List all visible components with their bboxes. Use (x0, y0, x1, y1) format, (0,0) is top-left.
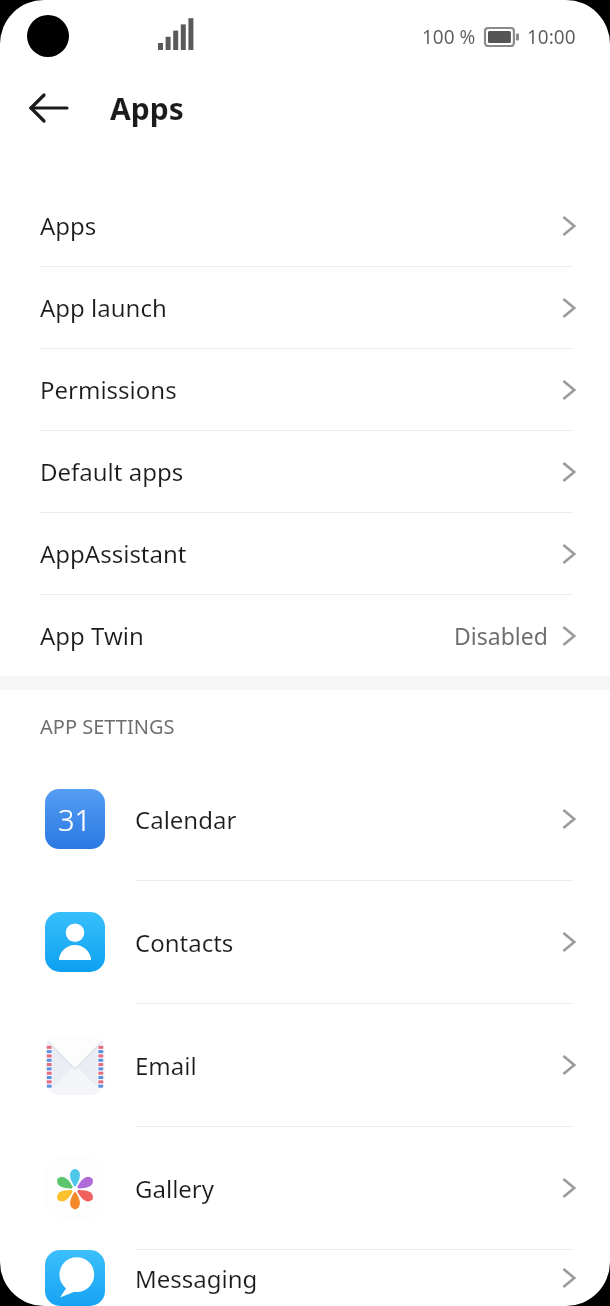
staticText: Permissions (40, 373, 177, 406)
staticText: App Twin (40, 619, 144, 652)
staticText: Apps (40, 209, 97, 242)
button[interactable]: AppAssistant (0, 513, 610, 594)
staticText: 31 (58, 800, 92, 839)
staticText: Messaging (135, 1262, 258, 1295)
button[interactable]: Gallery (0, 1127, 610, 1249)
staticText: AppAssistant (40, 537, 187, 570)
button[interactable]: Default apps (0, 431, 610, 512)
button[interactable]: Apps (0, 185, 610, 266)
staticText: 10:00 (527, 24, 576, 50)
button[interactable]: Permissions (0, 349, 610, 430)
staticText: 100 % (422, 24, 476, 50)
button[interactable]: App launch (0, 267, 610, 348)
staticText: Email (135, 1049, 197, 1082)
staticText: Apps (110, 88, 184, 129)
button[interactable]: Back (22, 81, 76, 135)
staticText: Contacts (135, 926, 234, 959)
button[interactable]: App Twin (0, 595, 610, 676)
staticText: Gallery (135, 1172, 215, 1205)
staticText: Calendar (135, 803, 237, 836)
staticText: Disabled (454, 620, 548, 651)
staticText: APP SETTINGS (40, 713, 175, 740)
staticText: Default apps (40, 455, 184, 488)
button[interactable]: Messaging (0, 1250, 610, 1306)
button[interactable]: Email (0, 1004, 610, 1126)
staticText: App launch (40, 291, 167, 324)
button[interactable]: 31 (0, 758, 610, 880)
button[interactable]: Contacts (0, 881, 610, 1003)
